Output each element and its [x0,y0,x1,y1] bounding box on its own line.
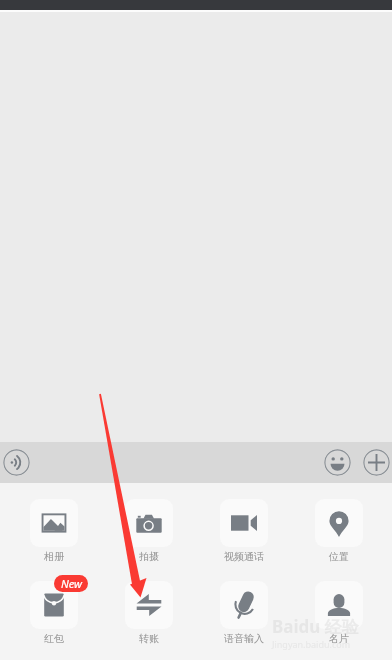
staticText: 语音输入 [224,632,264,645]
staticText: 名片 [329,632,349,645]
button[interactable]: Voice input [3,449,30,476]
button[interactable]: Emoji [324,449,351,476]
button[interactable]: 位置 [291,499,386,563]
button[interactable]: 语音输入 [196,581,291,645]
staticText: Jingyan.baidu.com [272,638,351,650]
button[interactable]: 视频通话 [196,499,291,563]
staticText: New [61,576,82,591]
button[interactable]: 相册 [6,499,101,563]
staticText: 视频通话 [224,550,264,563]
button[interactable]: More actions [363,449,390,476]
button[interactable]: 名片 [291,581,386,645]
button[interactable]: New [6,581,101,645]
staticText: 拍摄 [139,550,159,563]
button[interactable]: 拍摄 [101,499,196,563]
staticText: 转账 [139,632,159,645]
button[interactable]: 转账 [101,581,196,645]
staticText: 红包 [44,632,64,645]
staticText: 相册 [44,550,64,563]
staticText: Baidu 经验 [272,615,359,638]
staticText: 位置 [329,550,349,563]
